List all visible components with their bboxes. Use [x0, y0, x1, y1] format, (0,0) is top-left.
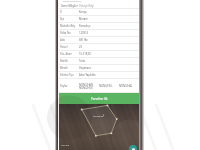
staticText: Edinim Tipi	[60, 73, 74, 77]
button[interactable]: Ada	[59, 37, 139, 43]
button[interactable]: Paylar	[59, 79, 139, 92]
button[interactable]: Nitelik	[59, 58, 139, 64]
staticText: Parsel	[60, 45, 68, 49]
staticText: 16.318,00	[79, 52, 91, 56]
staticText: Meram	[79, 17, 88, 21]
staticText: Google	[61, 143, 70, 146]
staticText: Nitelik	[60, 59, 68, 63]
staticText: Yüz. Alanı	[60, 52, 72, 56]
staticText: Mevkii	[60, 66, 68, 70]
button[interactable]: Pafta No	[59, 30, 139, 36]
button[interactable]: My location	[129, 145, 137, 150]
button[interactable]: Detaylı Bilgi	[78, 3, 95, 8]
staticText: 16.318 m²	[93, 114, 105, 117]
staticText: Tarla	[79, 59, 85, 63]
staticText: Paylar	[60, 84, 68, 88]
button[interactable]: Parseline Git	[59, 93, 139, 104]
button[interactable]: Mevkii	[59, 65, 139, 71]
staticText: NÖN/2HAN, NÖN/2HÜK	[79, 83, 94, 89]
staticText: Ada	[60, 38, 65, 42]
staticText: 120314	[79, 31, 88, 35]
staticText: Pafta No	[60, 31, 71, 35]
button[interactable]: İl	[59, 9, 139, 15]
staticText: Konya	[79, 10, 87, 14]
staticText: Detaylı Bilgi	[79, 4, 94, 8]
staticText: NÖN/2HAL	[119, 84, 133, 88]
staticText: İl	[60, 10, 62, 14]
staticText: Genel Bilgiler	[61, 4, 78, 8]
staticText: 681 No	[79, 38, 88, 42]
button[interactable]: İlçe	[59, 16, 139, 22]
staticText: Parseline Git	[91, 97, 108, 101]
button[interactable]: Yüz. Alanı	[59, 51, 139, 57]
staticText: NÖN/2HÜL	[99, 84, 113, 88]
button[interactable]: Genel Bilgiler	[61, 3, 78, 8]
staticText: İlçe	[60, 17, 65, 21]
staticText: 23	[79, 45, 82, 49]
button[interactable]: Edinim Tipi	[59, 72, 139, 78]
staticText: Ahar Yapıldıkı	[79, 73, 96, 77]
button[interactable]: Mahalle/Köy	[59, 23, 139, 29]
staticText: Haymana	[79, 66, 91, 70]
staticText: Pamukçu	[79, 24, 91, 28]
button[interactable]: Parsel	[59, 44, 139, 50]
staticText: Mahalle/Köy	[60, 24, 76, 28]
staticText: Parsel Sorgulama	[63, 0, 82, 3]
